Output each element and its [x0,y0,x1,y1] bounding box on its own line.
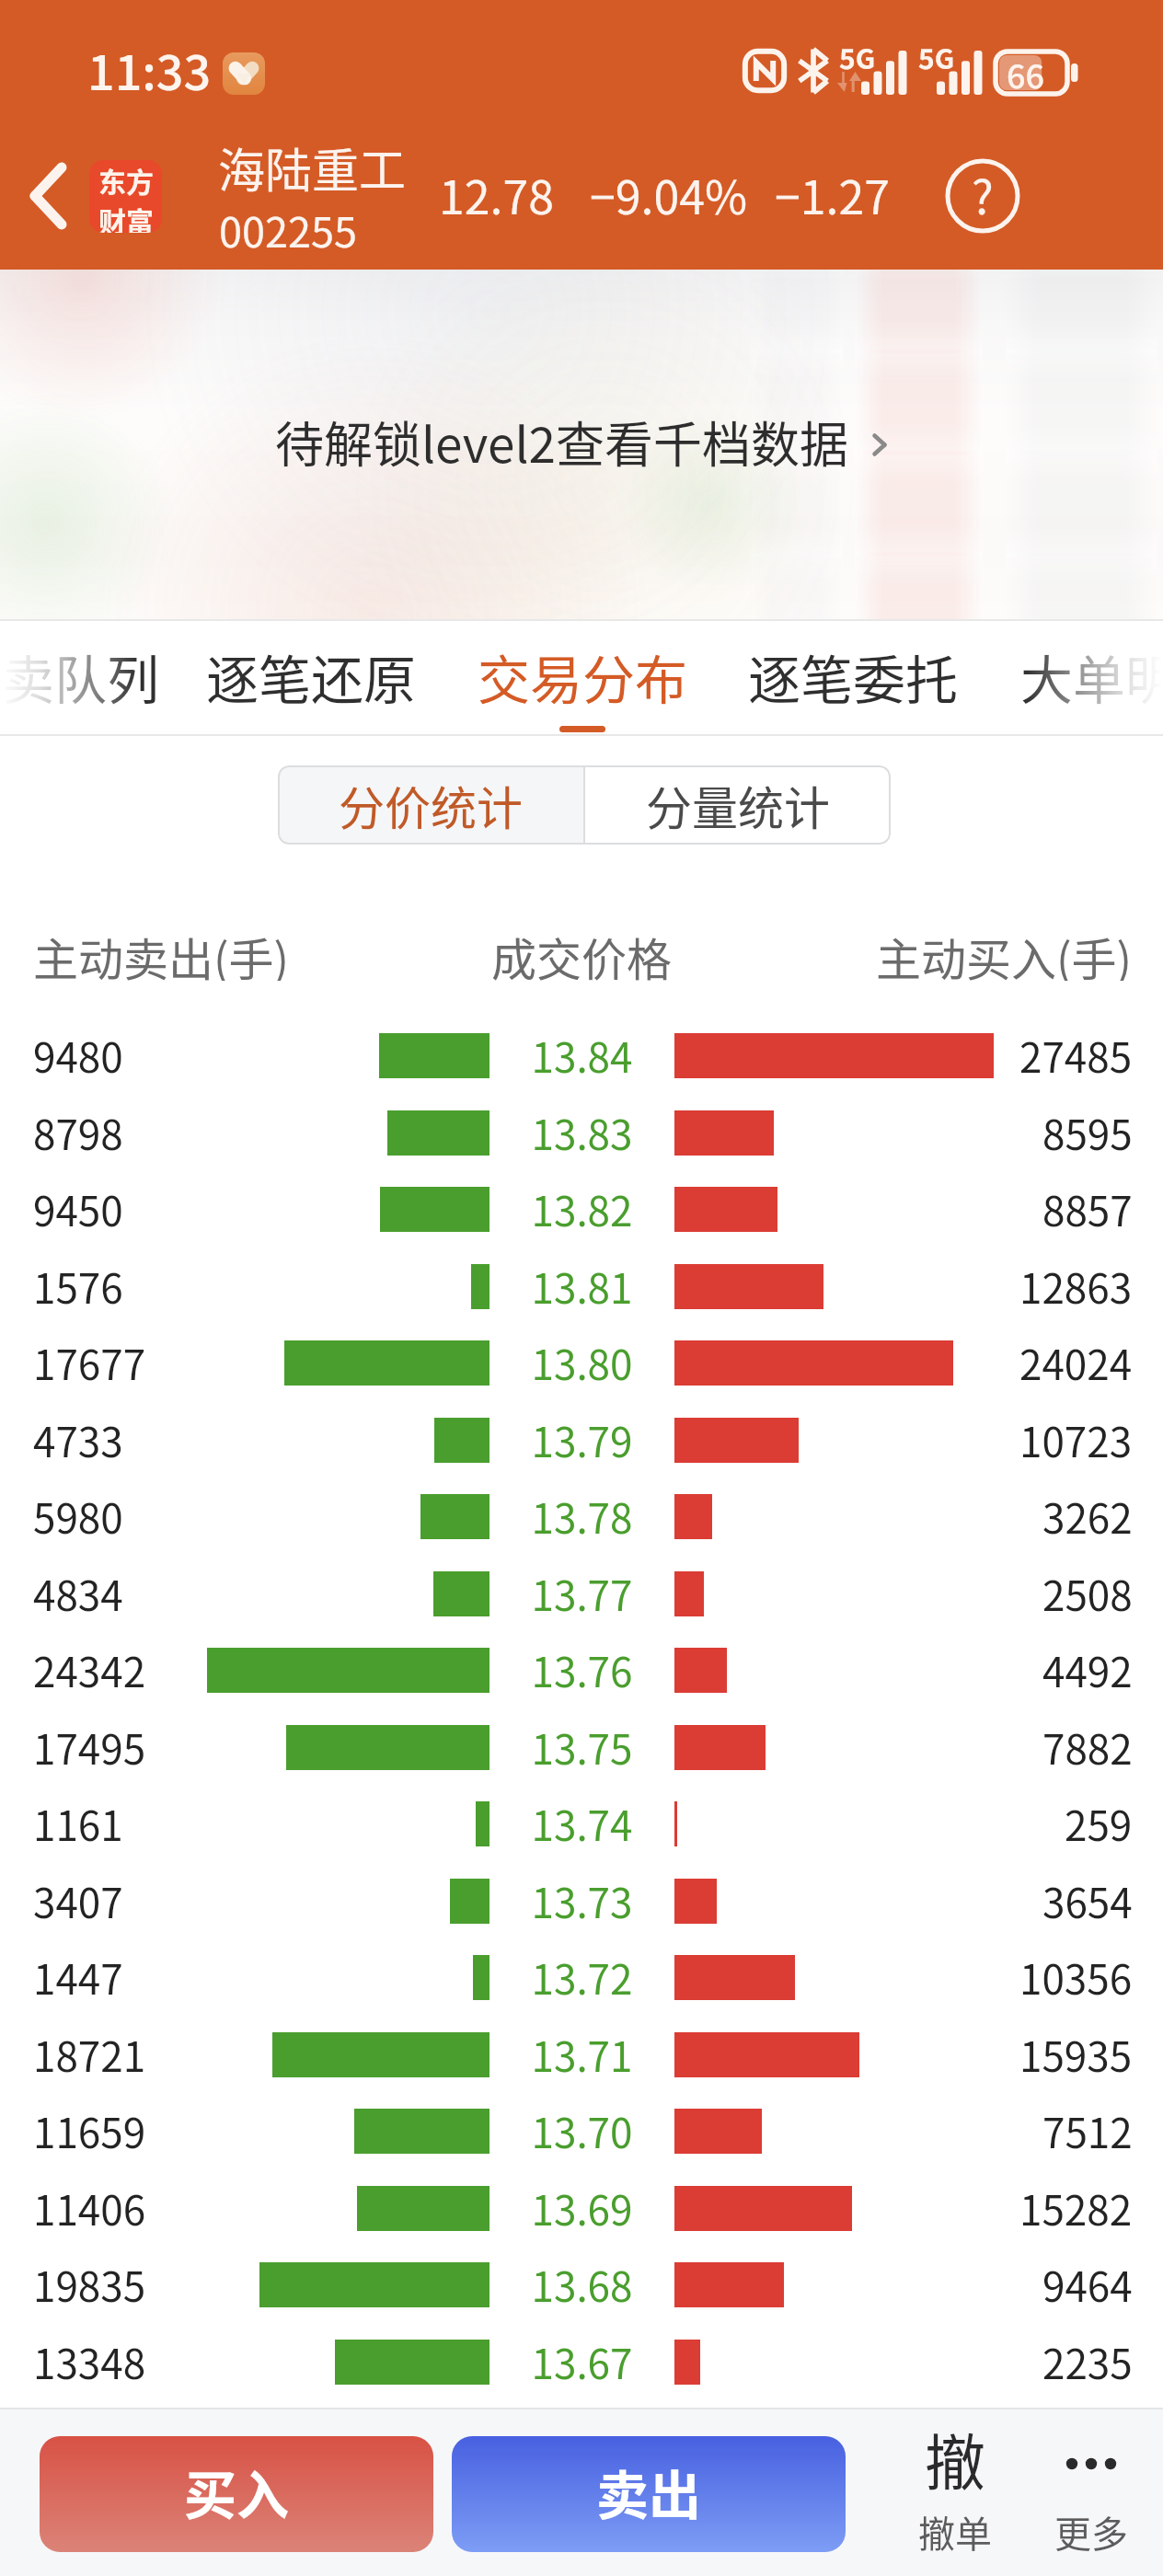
button[interactable]: 9450 [0,1170,1163,1248]
staticText: 13.76 [489,1640,674,1699]
button[interactable]: Back [0,145,96,247]
button[interactable]: 1576 [0,1248,1163,1325]
staticText: 13.70 [489,2101,674,2160]
button[interactable]: 买卖队列 [0,619,178,736]
button[interactable]: 8798 [0,1094,1163,1171]
staticText: 大单明细 [1020,638,1163,715]
staticText: 9480 [33,1026,123,1085]
staticText: 撤 [889,2414,1021,2502]
button[interactable]: 交易分布 [459,619,706,736]
button[interactable]: Help [937,150,1029,242]
staticText: 5G [839,37,876,76]
button[interactable]: More [1025,2417,1157,2569]
staticText: 主动卖出(手) [33,924,290,981]
staticText: 2508 [1042,1564,1133,1623]
staticText: 4492 [1042,1640,1133,1699]
staticText: −9.04% [590,161,747,227]
staticText: 12.78 [439,161,554,227]
staticText: 002255 [219,200,357,259]
staticText: 4834 [33,1564,123,1623]
staticText: 13.80 [489,1333,674,1392]
staticText: 13.83 [489,1103,674,1162]
button[interactable]: 1447 [0,1938,1163,2016]
staticText: 撤单 [889,2505,1021,2559]
staticText: 分量统计 [646,772,830,838]
button[interactable]: 11659 [0,2092,1163,2169]
staticText: 主动买入(手) [876,924,1133,981]
staticText: 259 [1065,1794,1133,1853]
staticText: 66 [1007,50,1045,98]
staticText: 13.67 [489,2332,674,2391]
staticText: 买卖队列 [0,638,159,715]
staticText: 海陆重工 [218,133,407,201]
staticText: 财富 [98,200,154,233]
button[interactable]: 卖出 [452,2436,846,2552]
button[interactable]: 大单明细 [1002,619,1163,736]
button[interactable]: 24342 [0,1631,1163,1708]
staticText: 13.84 [489,1026,674,1085]
staticText: 10356 [1019,1948,1133,2007]
button[interactable]: 逐笔委托 [730,619,976,736]
button[interactable]: 逐笔还原 [188,619,434,736]
staticText: 1576 [33,1257,123,1316]
staticText: 13.69 [489,2179,674,2237]
button[interactable]: 9480 [0,1017,1163,1094]
staticText: 13.79 [489,1410,674,1469]
staticText: 13.72 [489,1948,674,2007]
staticText: 13.68 [489,2255,674,2314]
button[interactable]: 17677 [0,1324,1163,1401]
button[interactable]: 5980 [0,1478,1163,1555]
staticText: 卖出 [596,2454,701,2530]
staticText: 12863 [1019,1257,1133,1316]
staticText: ? [972,161,994,227]
staticText: 逐笔委托 [748,638,958,715]
staticText: 分价统计 [339,772,523,838]
button[interactable]: 13348 [0,2323,1163,2400]
staticText: 13.78 [489,1487,674,1546]
button[interactable]: 18721 [0,2016,1163,2093]
button[interactable]: 撤 [889,2417,1021,2569]
staticText: 19835 [33,2255,146,2314]
staticText: 4733 [33,1410,123,1469]
button[interactable]: 4834 [0,1555,1163,1632]
staticText: 5980 [33,1487,123,1546]
staticText: 1161 [33,1794,123,1853]
staticText: 交易分布 [478,638,687,715]
button[interactable]: 4733 [0,1401,1163,1478]
staticText: 18721 [33,2025,146,2084]
staticText: 13.71 [489,2025,674,2084]
staticText: 5G [918,37,955,76]
staticText: 9464 [1042,2255,1133,2314]
staticText: 8798 [33,1103,123,1162]
staticText: 待解锁level2查看千档数据 [275,407,848,477]
staticText: 17495 [33,1718,146,1777]
staticText: 买入 [184,2454,289,2530]
button[interactable]: 待解锁level2查看千档数据 [0,270,1163,619]
staticText: 13.77 [489,1564,674,1623]
staticText: 13.73 [489,1871,674,1930]
staticText: 13.75 [489,1718,674,1777]
staticText: 24342 [33,1640,146,1699]
button[interactable]: 3407 [0,1862,1163,1939]
staticText: 15935 [1019,2025,1133,2084]
button[interactable]: 买入 [40,2436,433,2552]
button[interactable]: 17495 [0,1708,1163,1786]
staticText: 7512 [1042,2101,1133,2160]
staticText: 13.81 [489,1257,674,1316]
staticText: 17677 [33,1333,146,1392]
staticText: 3407 [33,1871,123,1930]
staticText: 更多 [1025,2505,1157,2559]
button[interactable]: 1161 [0,1785,1163,1862]
button[interactable]: 19835 [0,2246,1163,2323]
staticText: 东方 [98,160,154,200]
staticText: 3262 [1042,1487,1133,1546]
button[interactable]: 分量统计 [585,765,891,845]
staticText: 8595 [1042,1103,1133,1162]
staticText: 15282 [1019,2179,1133,2237]
staticText: 10723 [1019,1410,1133,1469]
staticText: 逐笔还原 [206,638,416,715]
button[interactable]: 分价统计 [278,765,583,845]
staticText: 11:33 [87,35,212,104]
button[interactable]: 11406 [0,2169,1163,2247]
staticText: −1.27 [775,161,890,227]
